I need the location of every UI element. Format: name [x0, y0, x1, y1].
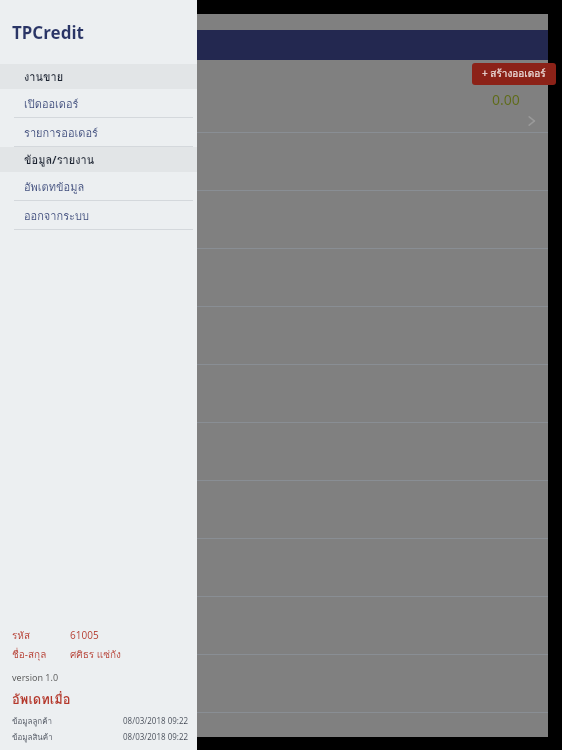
button[interactable]: [0, 712, 548, 737]
staticText: ศศิธร แซ่กัง: [70, 647, 121, 663]
staticText: ข้อมูลสินค้า: [12, 731, 123, 744]
staticText: 08/03/2018 09:22: [123, 715, 189, 726]
other: Open order: [528, 115, 536, 127]
staticText: 61005: [70, 628, 99, 642]
staticText: ชื่อ-สกุล: [12, 647, 70, 663]
staticText: 08/03/2018 09:22: [123, 731, 189, 742]
staticText: ออกจากระบบ: [24, 207, 89, 224]
button[interactable]: [0, 596, 548, 654]
button[interactable]: [0, 248, 548, 306]
button[interactable]: เปิดออเดอร์: [0, 89, 197, 118]
staticText: ออเดอร์: [72, 37, 109, 54]
staticText: ข้อมูล/รายงาน: [24, 151, 95, 168]
button[interactable]: ออกจากระบบ: [0, 201, 197, 230]
button[interactable]: [0, 422, 548, 480]
staticText: + สร้างออเดอร์: [482, 66, 546, 82]
button[interactable]: งานขาย: [0, 64, 197, 89]
staticText: อัพเดทเมื่อ: [12, 689, 71, 710]
staticText: รหัส: [12, 628, 70, 644]
staticText: 0.00: [492, 90, 520, 109]
button[interactable]: + สร้างออเดอร์: [472, 63, 556, 85]
button[interactable]: ข้อมูล/รายงาน: [0, 147, 197, 172]
staticText: งานขาย: [24, 68, 64, 85]
button[interactable]: [0, 132, 548, 190]
button[interactable]: [0, 538, 548, 596]
staticText: อัพเตทข้อมูล: [24, 178, 85, 195]
button[interactable]: [0, 364, 548, 422]
staticText: เปิดออเดอร์: [24, 95, 79, 112]
button[interactable]: [0, 306, 548, 364]
staticText: รายการออเดอร์: [24, 124, 98, 141]
button[interactable]: [0, 190, 548, 248]
staticText: version 1.0: [12, 671, 59, 683]
button[interactable]: รายการออเดอร์: [0, 118, 197, 147]
staticText: TPCredit: [12, 21, 84, 44]
button[interactable]: อัพเตทข้อมูล: [0, 172, 197, 201]
button[interactable]: [0, 654, 548, 712]
staticText: ข้อมูลลูกค้า: [12, 715, 123, 728]
button[interactable]: [0, 480, 548, 538]
